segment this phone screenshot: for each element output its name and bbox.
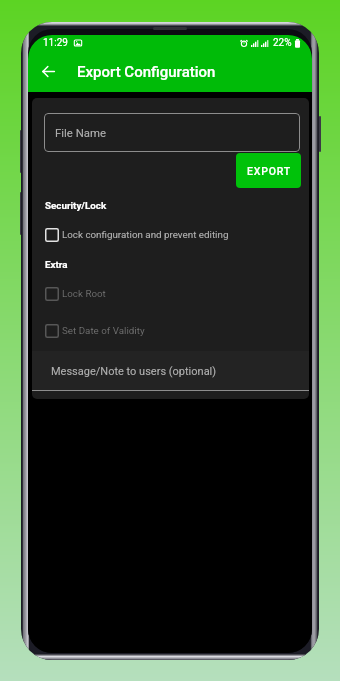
button[interactable]: Set Date of Validity [32,312,309,349]
button[interactable]: Back [32,55,65,88]
staticText: Security/Lock [45,200,107,211]
button[interactable]: Message/Note to users (optional) [32,351,309,391]
staticText: Export Configuration [77,63,216,81]
staticText: Set Date of Validity [62,325,145,336]
staticText: Lock configuration and prevent editing [62,229,229,240]
staticText: 11:29 [43,37,68,49]
staticText: EXPORT [247,165,291,177]
button[interactable]: EXPORT [236,153,301,188]
button[interactable]: Lock Root [32,275,309,312]
staticText: Message/Note to users (optional) [51,365,217,378]
staticText: Lock Root [62,288,106,299]
staticText: Extra [45,259,68,270]
button[interactable]: File Name [44,113,300,152]
button[interactable]: Lock configuration and prevent editing [32,216,309,253]
staticText: 22% [273,37,292,49]
staticText: File Name [55,126,107,139]
